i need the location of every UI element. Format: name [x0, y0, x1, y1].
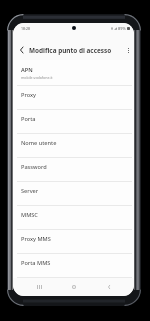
button[interactable]: Porta MMS	[13, 254, 134, 278]
staticText: Proxy	[21, 91, 36, 99]
staticText: Server	[21, 187, 39, 195]
staticText: MMSC	[21, 211, 38, 219]
button[interactable]: Proxy	[13, 86, 134, 110]
button[interactable]: Porta	[13, 110, 134, 134]
staticText: 18:28	[21, 26, 30, 31]
button[interactable]: Home	[63, 280, 85, 294]
button[interactable]: Proxy MMS	[13, 230, 134, 254]
staticText: 89%	[118, 26, 126, 31]
staticText: Porta MMS	[21, 259, 51, 267]
staticText: APN	[21, 66, 33, 74]
button[interactable]: Nome utente	[13, 134, 134, 158]
button[interactable]: Recents	[28, 280, 50, 294]
staticText: Porta	[21, 115, 36, 123]
staticText: mobile.vodafone.it	[21, 75, 53, 80]
staticText: Nome utente	[21, 139, 57, 147]
button[interactable]: Back	[13, 43, 29, 57]
button[interactable]: APN	[13, 60, 134, 86]
staticText: Modifica punto di accesso	[29, 46, 112, 55]
button[interactable]: More options	[122, 43, 134, 57]
staticText: Password	[21, 163, 47, 171]
button[interactable]: Back	[98, 280, 120, 294]
button[interactable]: Server	[13, 182, 134, 206]
staticText: Proxy MMS	[21, 235, 51, 243]
button[interactable]: Password	[13, 158, 134, 182]
button[interactable]: MMSC	[13, 206, 134, 230]
